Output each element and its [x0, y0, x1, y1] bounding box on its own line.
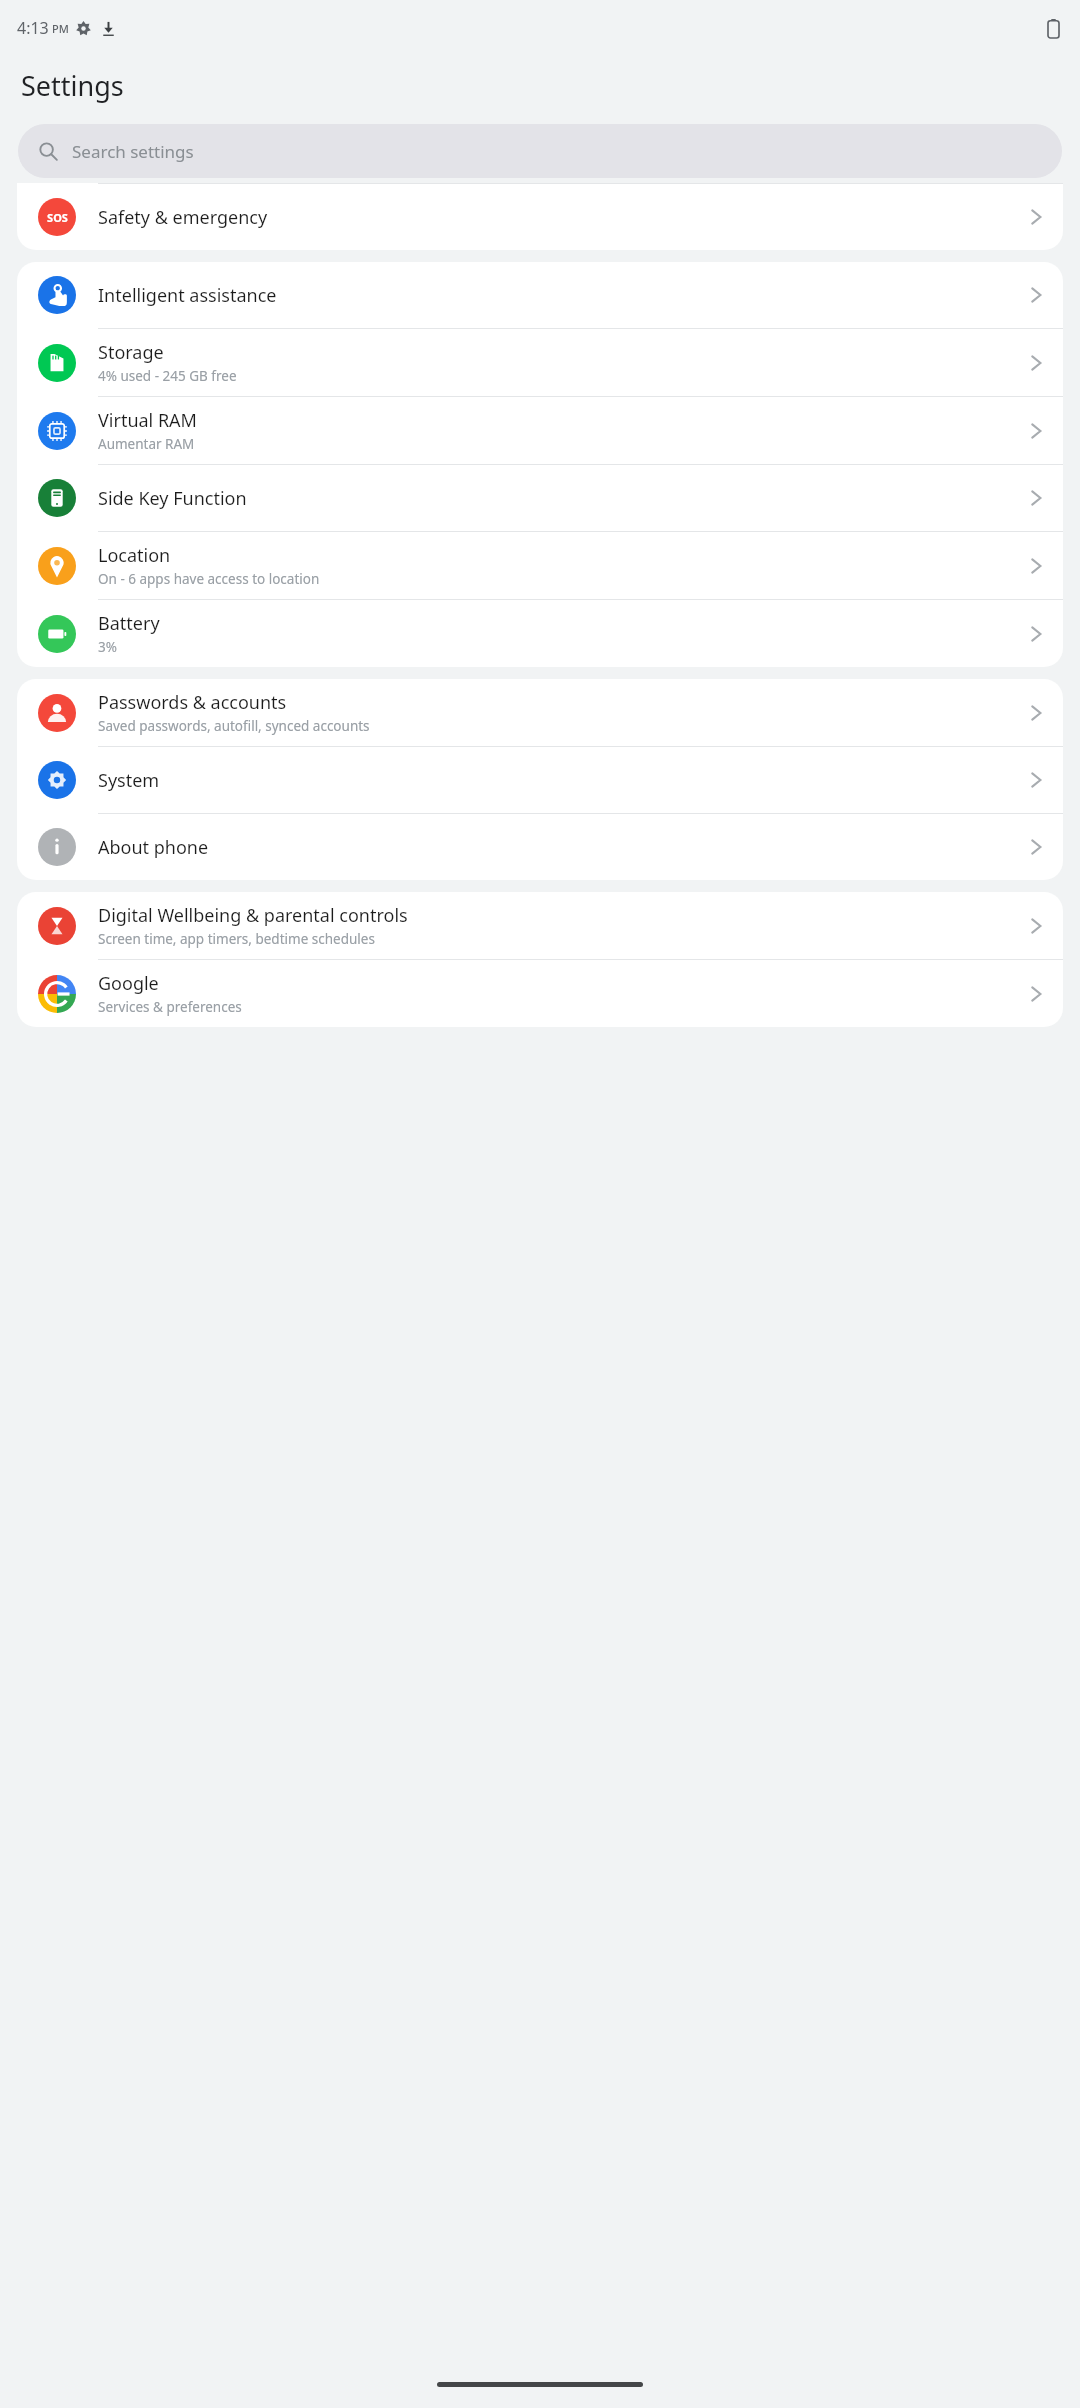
- button[interactable]: Storage: [17, 329, 1063, 396]
- button[interactable]: Side Key Function: [17, 465, 1063, 531]
- staticText: Side Key Function: [98, 486, 247, 511]
- button[interactable]: Intelligent assistance: [17, 262, 1063, 328]
- staticText: PM: [52, 21, 69, 36]
- staticText: Services & preferences: [98, 998, 242, 1016]
- staticText: Search settings: [72, 140, 194, 163]
- staticText: Settings: [21, 67, 124, 104]
- staticText: Google: [98, 971, 159, 996]
- button[interactable]: Digital Wellbeing & parental controls: [17, 892, 1063, 959]
- staticText: Safety & emergency: [98, 205, 268, 230]
- staticText: Virtual RAM: [98, 408, 197, 433]
- button[interactable]: Virtual RAM: [17, 397, 1063, 464]
- staticText: System: [98, 768, 160, 793]
- staticText: Aumentar RAM: [98, 435, 195, 453]
- staticText: About phone: [98, 835, 209, 860]
- button[interactable]: Location: [17, 532, 1063, 599]
- staticText: Storage: [98, 340, 164, 365]
- button[interactable]: SOS: [17, 184, 1063, 250]
- staticText: Intelligent assistance: [98, 283, 277, 308]
- staticText: On - 6 apps have access to location: [98, 570, 320, 588]
- staticText: Battery: [98, 611, 160, 636]
- button[interactable]: System: [17, 747, 1063, 813]
- button[interactable]: Search settings: [18, 124, 1062, 178]
- staticText: Location: [98, 543, 171, 568]
- staticText: Passwords & accounts: [98, 690, 287, 715]
- button[interactable]: Google: [17, 960, 1063, 1027]
- staticText: Saved passwords, autofill, synced accoun…: [98, 717, 370, 735]
- staticText: Screen time, app timers, bedtime schedul…: [98, 930, 375, 948]
- staticText: 4% used - 245 GB free: [98, 367, 237, 385]
- button[interactable]: Passwords & accounts: [17, 679, 1063, 746]
- button[interactable]: Battery: [17, 600, 1063, 667]
- button[interactable]: About phone: [17, 814, 1063, 880]
- staticText: 4:13: [17, 17, 49, 39]
- staticText: 3%: [98, 638, 117, 656]
- staticText: SOS: [47, 210, 68, 225]
- staticText: Digital Wellbeing & parental controls: [98, 903, 408, 928]
